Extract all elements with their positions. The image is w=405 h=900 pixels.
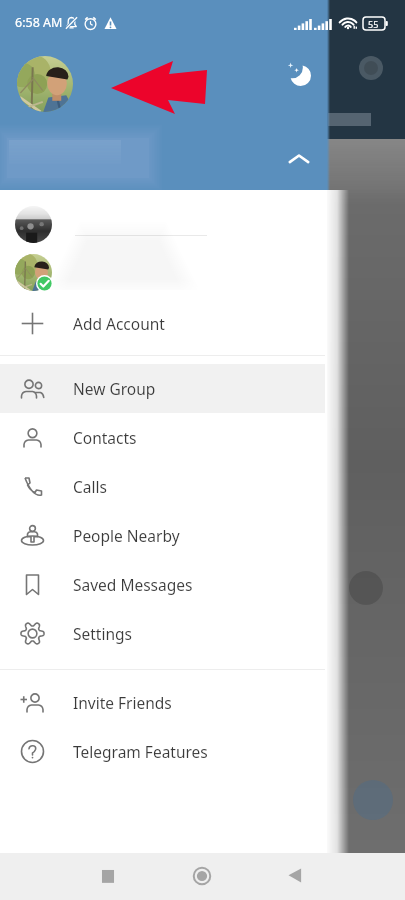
staticText: 55 [368, 18, 379, 30]
button[interactable]: Recents [94, 862, 122, 890]
staticText: 6:58 AM [15, 14, 63, 31]
staticText: New Group [73, 378, 156, 399]
button[interactable]: Expand accounts [281, 141, 317, 177]
button[interactable]: Telegram Features [0, 727, 327, 776]
button[interactable]: People Nearby [0, 511, 327, 560]
staticText: Add Account [73, 313, 165, 334]
button[interactable]: Add Account [0, 299, 327, 348]
button[interactable]: Contacts [0, 413, 327, 462]
button[interactable]: New Group [0, 364, 327, 413]
button[interactable]: Invite Friends [0, 678, 327, 727]
button[interactable]: Night mode [281, 56, 317, 92]
button[interactable]: Account 2 [15, 254, 52, 291]
staticText: Telegram Features [73, 741, 208, 762]
button[interactable]: Settings [0, 609, 327, 658]
button[interactable]: Home [188, 862, 216, 890]
staticText: Saved Messages [73, 574, 193, 595]
staticText: Settings [73, 623, 132, 644]
staticText: Invite Friends [73, 692, 172, 713]
button[interactable]: Account 1 [15, 206, 52, 243]
staticText: People Nearby [73, 525, 180, 546]
button[interactable]: Calls [0, 462, 327, 511]
button[interactable]: Back [279, 862, 307, 890]
staticText: Contacts [73, 427, 137, 448]
button[interactable]: Saved Messages [0, 560, 327, 609]
staticText: Calls [73, 476, 107, 497]
button[interactable]: Profile photo [17, 56, 73, 112]
